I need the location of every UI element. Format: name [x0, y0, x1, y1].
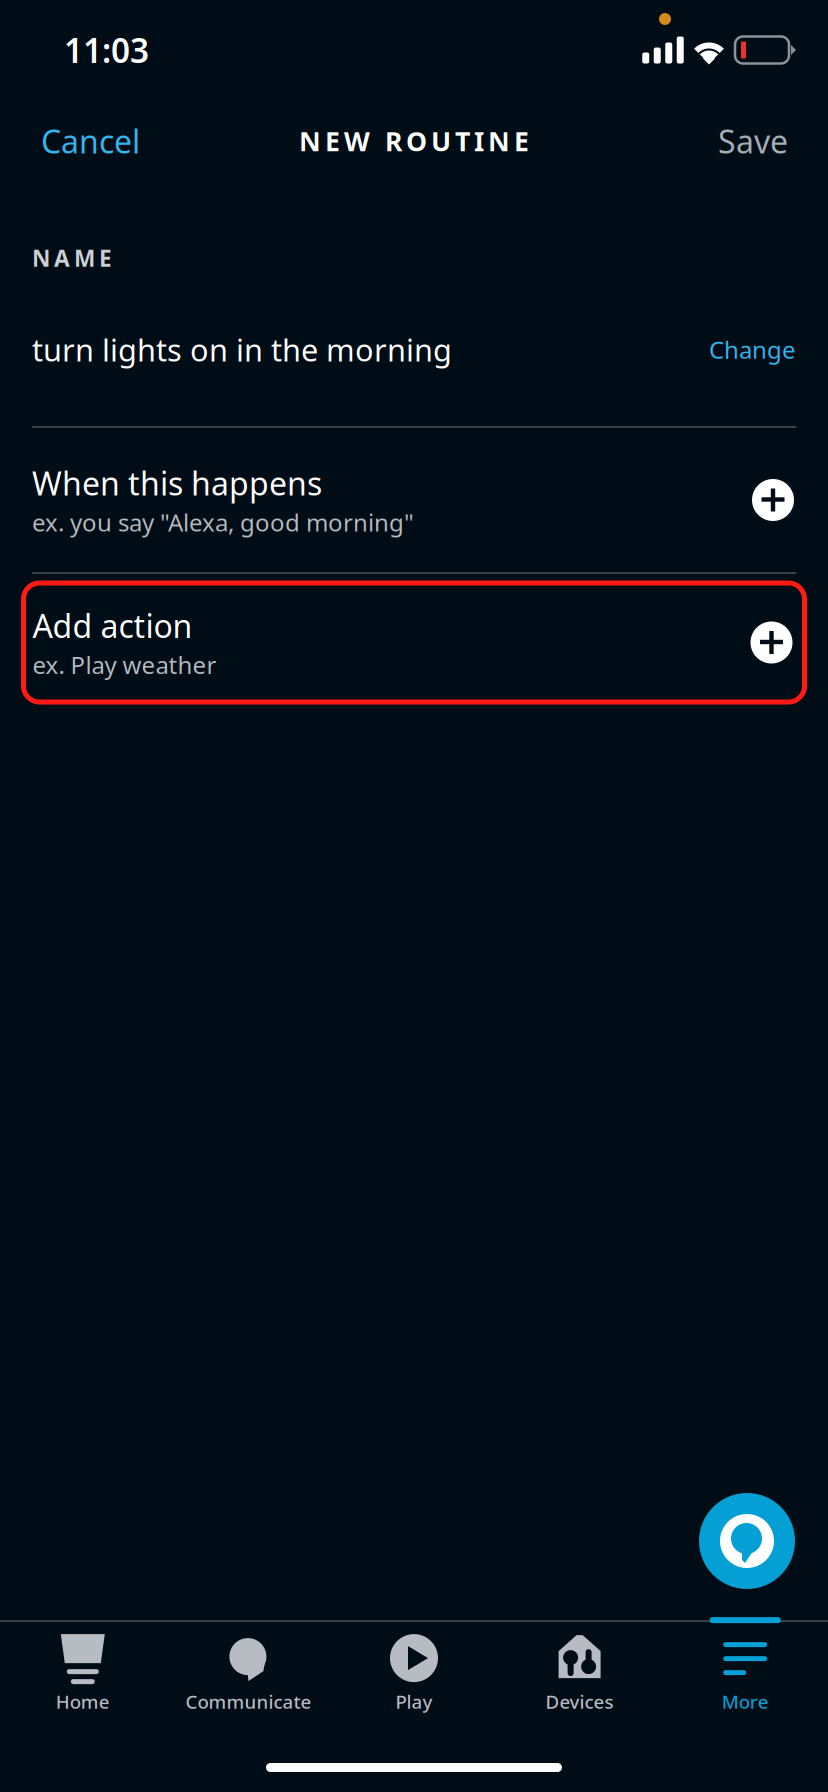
button[interactable]: Play	[331, 1621, 497, 1721]
staticText: When this happens	[32, 462, 322, 504]
button[interactable]: turn lights on in the morning	[0, 273, 828, 426]
staticText: turn lights on in the morning	[32, 329, 452, 370]
button[interactable]: Communicate	[166, 1621, 331, 1721]
button[interactable]: Cancel	[32, 104, 149, 178]
button[interactable]: Save	[709, 104, 797, 178]
staticText: Devices	[546, 1689, 614, 1714]
staticText: Save	[718, 120, 788, 162]
button[interactable]: Home	[0, 1621, 166, 1721]
staticText: Add action	[32, 604, 192, 647]
staticText: Communicate	[185, 1689, 311, 1714]
button[interactable]: Add action	[0, 574, 828, 702]
staticText: N A M E	[32, 243, 112, 273]
staticText: Cancel	[41, 120, 140, 162]
staticText: ex. you say "Alexa, good morning"	[32, 506, 414, 538]
staticText: ex. Play weather	[32, 649, 216, 681]
staticText: 11:03	[64, 28, 149, 72]
staticText: Home	[56, 1689, 110, 1714]
staticText: Play	[395, 1689, 432, 1714]
staticText: Change	[709, 334, 796, 365]
button[interactable]: More	[662, 1621, 828, 1721]
staticText: More	[722, 1689, 769, 1714]
button[interactable]: Alexa	[699, 1493, 795, 1589]
staticText: N E W R O U T I N E	[299, 123, 529, 159]
button[interactable]: Devices	[497, 1621, 662, 1721]
button[interactable]: When this happens	[0, 428, 828, 572]
